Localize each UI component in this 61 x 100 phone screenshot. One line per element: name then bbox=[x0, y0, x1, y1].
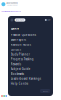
staticText: Rewards bbox=[11, 62, 21, 66]
staticText: Sign out bbox=[43, 90, 48, 92]
staticText: Leaderboard Rankings bbox=[11, 77, 41, 80]
staticText: Jonathan R. bbox=[16, 19, 24, 21]
button[interactable]: Exam Papers bbox=[11, 37, 53, 42]
staticText: Help Centre bbox=[11, 82, 29, 85]
staticText: Bookmarks bbox=[11, 72, 24, 76]
button[interactable]: Subject Guide bbox=[11, 67, 53, 71]
staticText: Practice Questions bbox=[11, 33, 36, 37]
button[interactable]: Jonathan R. bbox=[15, 18, 25, 22]
button[interactable]: Quizzes bbox=[11, 47, 53, 52]
button[interactable]: Practice Questions bbox=[11, 32, 53, 37]
button[interactable]: 0 XP bbox=[45, 19, 50, 21]
staticText: Exam Papers bbox=[11, 38, 26, 41]
staticText: Study Planner bbox=[11, 53, 30, 56]
button[interactable]: Progress Tracking bbox=[11, 57, 53, 62]
staticText: Progress Tracking bbox=[11, 57, 34, 61]
staticText: Revision Notes bbox=[11, 43, 31, 46]
button[interactable]: Help Centre bbox=[11, 81, 53, 86]
staticText: Keep it up! Finish today's lesson bbox=[1, 11, 21, 12]
button[interactable]: Bookmarks bbox=[11, 71, 53, 76]
staticText: Subject Guide bbox=[11, 67, 31, 71]
staticText: Quizzes bbox=[11, 48, 21, 51]
staticText: LEARN bbox=[11, 27, 19, 30]
staticText: Jonathan Reed bbox=[7, 2, 18, 4]
staticText: Level 4 · 1280 XP bbox=[7, 4, 18, 6]
button[interactable]: Leaderboard Rankings bbox=[11, 76, 53, 81]
staticText: 0 XP bbox=[47, 19, 50, 21]
button[interactable]: Study Planner bbox=[11, 52, 53, 57]
button[interactable]: Sign out bbox=[40, 89, 50, 93]
button[interactable]: Rewards bbox=[11, 62, 53, 67]
button[interactable]: Revision Notes bbox=[11, 42, 53, 47]
